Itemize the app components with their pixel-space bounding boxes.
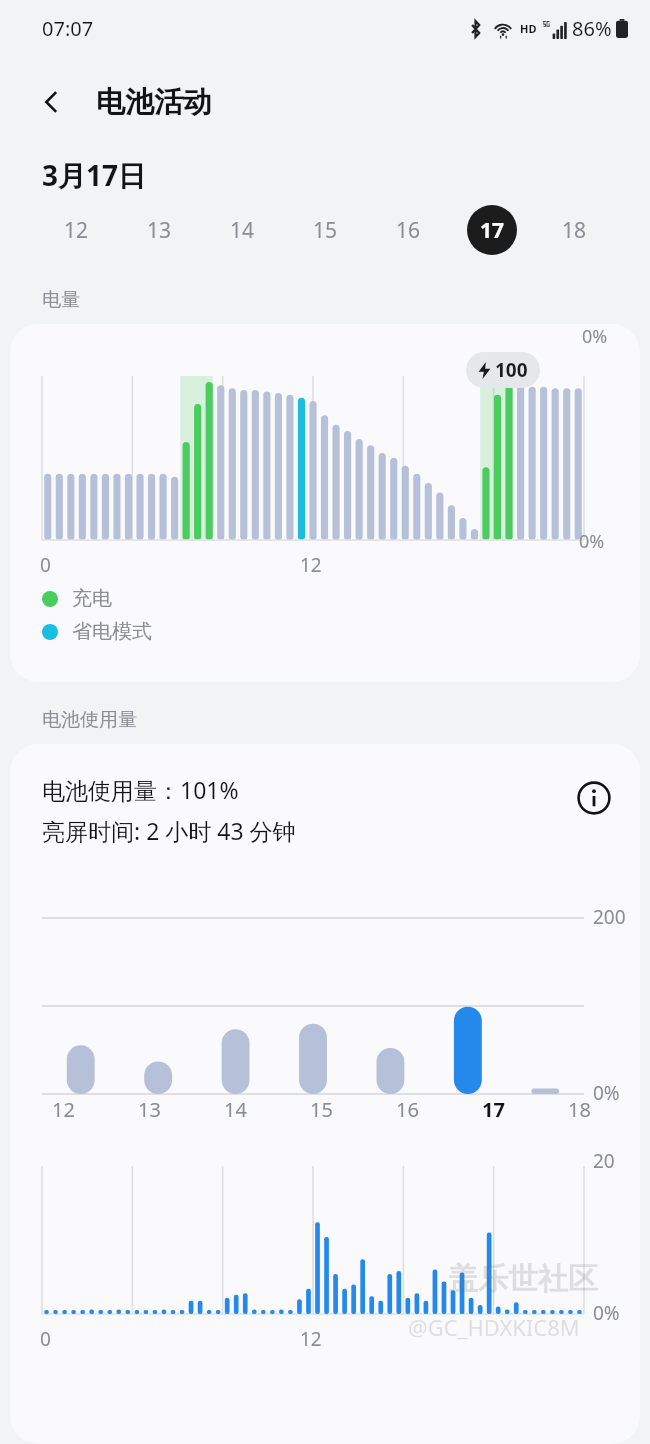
staticText: 13	[138, 1096, 161, 1123]
staticText: 0%	[593, 1080, 620, 1106]
staticText: 电量	[42, 288, 80, 312]
staticText: 盖乐世社区	[448, 1260, 598, 1298]
staticText: HD	[520, 21, 537, 36]
staticText: 12	[52, 1096, 75, 1123]
staticText: 07:07	[42, 15, 94, 42]
button[interactable]: 12	[34, 200, 118, 260]
button[interactable]: 18	[533, 200, 616, 260]
staticText: 15	[313, 216, 338, 245]
staticText: 17	[482, 1096, 505, 1123]
staticText: 0%	[593, 1300, 620, 1326]
button[interactable]: Info	[570, 774, 618, 822]
button[interactable]: Back	[26, 76, 78, 128]
staticText: 16	[396, 1096, 419, 1123]
staticText: 电池使用量：101%	[42, 774, 239, 805]
button[interactable]: 16	[367, 200, 450, 260]
staticText: 18	[568, 1096, 591, 1123]
staticText: 0	[40, 1326, 51, 1352]
staticText: @GC_HDXKIC8M	[408, 1312, 580, 1342]
staticText: 18	[562, 216, 587, 245]
staticText: 200	[593, 904, 626, 930]
staticText: 14	[230, 216, 255, 245]
staticText: 0%	[582, 324, 608, 349]
staticText: 省电模式	[72, 619, 152, 644]
staticText: 0%	[579, 529, 605, 554]
staticText: 100	[495, 357, 528, 383]
staticText: 20	[593, 1148, 615, 1174]
staticText: 16	[396, 216, 421, 245]
staticText: 14	[224, 1096, 247, 1123]
staticText: 12	[64, 216, 89, 245]
staticText: 86%	[572, 15, 612, 42]
staticText: 亮屏时间: 2 小时 43 分钟	[42, 815, 296, 846]
staticText: 电池活动	[96, 84, 212, 121]
staticText: 17	[480, 216, 505, 245]
button[interactable]: 0%	[10, 324, 640, 682]
staticText: 12	[300, 552, 322, 578]
staticText: 3月17日	[42, 156, 147, 194]
staticText: 充电	[72, 586, 112, 611]
button[interactable]: 17	[450, 200, 533, 260]
staticText: 13	[147, 216, 172, 245]
button[interactable]: 14	[201, 200, 284, 260]
button[interactable]: 15	[284, 200, 367, 260]
staticText: 电池使用量	[42, 708, 137, 732]
staticText: 15	[310, 1096, 333, 1123]
button[interactable]: 13	[118, 200, 201, 260]
staticText: 12	[300, 1326, 322, 1352]
staticText: 0	[40, 552, 51, 578]
